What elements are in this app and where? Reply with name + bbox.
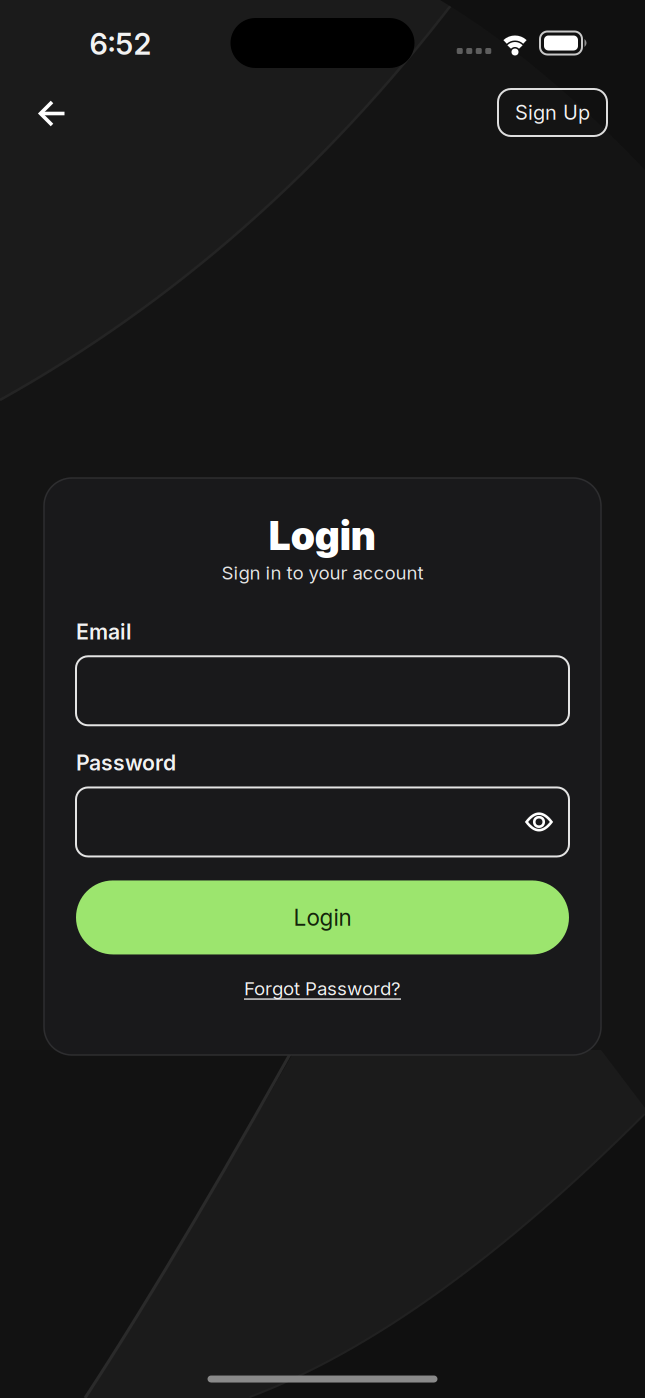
secureTextField[interactable] <box>96 809 549 835</box>
staticText: Forgot Password? <box>244 977 401 999</box>
button[interactable]: Forgot Password? <box>244 977 401 999</box>
staticText: Login <box>293 904 351 931</box>
button[interactable]: Back <box>24 89 80 137</box>
staticText: Login <box>269 512 376 560</box>
button[interactable]: Sign Up <box>498 89 607 136</box>
staticText: Sign in to your account <box>221 562 423 584</box>
staticText: Email <box>76 619 132 644</box>
staticText: Password <box>76 750 176 775</box>
button[interactable]: Login <box>76 880 569 954</box>
button[interactable]: Show password <box>517 787 561 856</box>
staticText: 6:52 <box>89 27 151 61</box>
staticText: Sign Up <box>515 101 590 124</box>
